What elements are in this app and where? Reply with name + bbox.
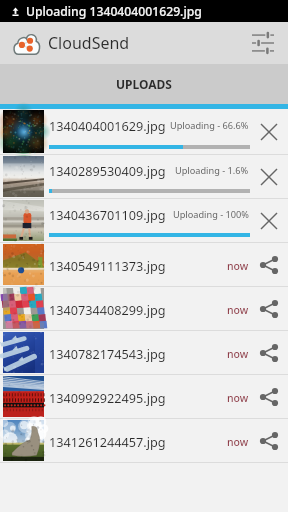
- button[interactable]: Cancel: [250, 199, 288, 243]
- button[interactable]: Share: [250, 243, 288, 287]
- button[interactable]: 1341261244457.jpg: [0, 419, 288, 463]
- staticText: 1341261244457.jpg: [49, 433, 166, 450]
- button[interactable]: Share: [250, 331, 288, 375]
- button[interactable]: 1340549111373.jpg: [0, 243, 288, 287]
- button[interactable]: 1340404001629.jpg: [0, 109, 288, 155]
- button[interactable]: 1340992922495.jpg: [0, 375, 288, 419]
- staticText: 1340782174543.jpg: [49, 345, 166, 362]
- staticText: now: [227, 259, 249, 273]
- button[interactable]: 1340289530409.jpg: [0, 155, 288, 199]
- staticText: 1340734408299.jpg: [49, 301, 166, 318]
- staticText: Uploading - 66.6%: [170, 119, 249, 132]
- button[interactable]: Share: [250, 375, 288, 419]
- button[interactable]: Cancel: [250, 109, 288, 155]
- button[interactable]: UPLOADS: [0, 64, 288, 104]
- staticText: UPLOADS: [116, 76, 172, 92]
- staticText: now: [227, 435, 249, 449]
- button[interactable]: 1340734408299.jpg: [0, 287, 288, 331]
- button[interactable]: Share: [250, 419, 288, 463]
- staticText: 1340436701109.jpg: [49, 206, 166, 223]
- staticText: Uploading 1340404001629.jpg: [26, 3, 202, 20]
- staticText: 1340289530409.jpg: [49, 162, 166, 179]
- staticText: CloudSend: [48, 32, 130, 54]
- staticText: now: [227, 303, 249, 317]
- staticText: now: [227, 391, 249, 405]
- staticText: Uploading - 1.6%: [175, 164, 249, 177]
- staticText: 1340992922495.jpg: [49, 389, 166, 406]
- button[interactable]: Share: [250, 287, 288, 331]
- staticText: Uploading - 100%: [173, 208, 249, 221]
- staticText: 1340404001629.jpg: [49, 117, 166, 134]
- button[interactable]: 1340782174543.jpg: [0, 331, 288, 375]
- staticText: 1340549111373.jpg: [49, 257, 166, 274]
- staticText: now: [227, 347, 249, 361]
- button[interactable]: Settings: [241, 22, 284, 64]
- button[interactable]: 1340436701109.jpg: [0, 199, 288, 243]
- button[interactable]: Cancel: [250, 155, 288, 199]
